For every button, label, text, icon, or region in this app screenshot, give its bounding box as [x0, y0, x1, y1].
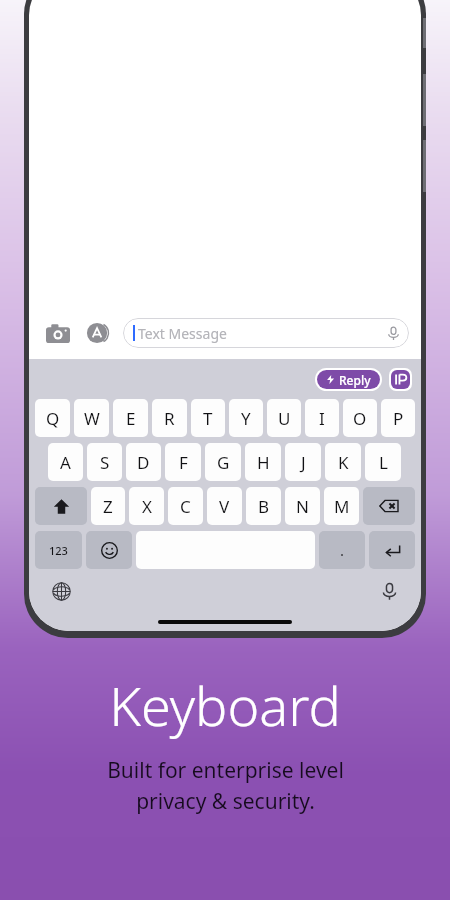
staticText: K: [338, 451, 349, 474]
staticText: F: [179, 451, 188, 474]
button[interactable]: Z: [91, 487, 125, 525]
staticText: Reply: [339, 372, 371, 388]
button[interactable]: U: [267, 399, 301, 437]
button[interactable]: Backspace: [363, 487, 415, 525]
button[interactable]: X: [129, 487, 164, 525]
staticText: privacy & security.: [136, 787, 315, 816]
staticText: Keyboard: [109, 668, 341, 742]
button[interactable]: C: [168, 487, 203, 525]
staticText: Built for enterprise level: [107, 756, 344, 785]
staticText: N: [296, 495, 309, 518]
button[interactable]: O: [343, 399, 377, 437]
button[interactable]: Switch language: [47, 577, 75, 605]
staticText: X: [142, 495, 152, 518]
button[interactable]: Camera: [41, 316, 75, 350]
staticText: A: [60, 451, 71, 474]
staticText: U: [278, 407, 291, 430]
staticText: P: [393, 407, 404, 430]
button[interactable]: .: [319, 531, 365, 569]
staticText: C: [180, 495, 191, 518]
button[interactable]: D: [126, 443, 161, 481]
staticText: T: [203, 407, 213, 430]
staticText: Y: [241, 407, 251, 430]
staticText: Text Message: [138, 324, 227, 343]
button[interactable]: W: [74, 399, 109, 437]
button[interactable]: J: [285, 443, 321, 481]
button[interactable]: Emoji: [86, 531, 132, 569]
button[interactable]: Y: [229, 399, 263, 437]
staticText: H: [257, 451, 270, 474]
button[interactable]: P: [381, 399, 415, 437]
button[interactable]: Dictate: [375, 577, 403, 605]
button[interactable]: S: [87, 443, 122, 481]
button[interactable]: L: [365, 443, 401, 481]
button[interactable]: Keyboard app: [391, 370, 410, 389]
staticText: W: [84, 407, 100, 430]
staticText: Q: [46, 407, 60, 430]
staticText: 123: [49, 543, 68, 558]
staticText: M: [334, 495, 350, 518]
staticText: J: [301, 451, 306, 474]
button[interactable]: Reply: [317, 370, 380, 389]
button[interactable]: F: [165, 443, 201, 481]
button[interactable]: Apps: [81, 316, 115, 350]
button[interactable]: B: [246, 487, 281, 525]
staticText: R: [164, 407, 175, 430]
staticText: L: [379, 451, 388, 474]
staticText: E: [126, 407, 136, 430]
button[interactable]: K: [325, 443, 361, 481]
button[interactable]: Q: [35, 399, 70, 437]
staticText: V: [219, 495, 230, 518]
staticText: B: [258, 495, 270, 518]
button[interactable]: E: [113, 399, 148, 437]
button[interactable]: H: [245, 443, 281, 481]
button[interactable]: Shift: [35, 487, 87, 525]
button[interactable]: N: [285, 487, 320, 525]
button[interactable]: I: [305, 399, 339, 437]
staticText: S: [100, 451, 110, 474]
button[interactable]: T: [191, 399, 225, 437]
button[interactable]: Return: [369, 531, 415, 569]
button[interactable]: V: [207, 487, 242, 525]
staticText: G: [217, 451, 230, 474]
staticText: O: [353, 407, 367, 430]
button[interactable]: G: [205, 443, 241, 481]
button[interactable]: Text Message: [123, 318, 409, 348]
staticText: D: [137, 451, 150, 474]
button[interactable]: 123: [35, 531, 82, 569]
staticText: Z: [103, 495, 113, 518]
button[interactable]: M: [324, 487, 359, 525]
button[interactable]: A: [48, 443, 83, 481]
staticText: .: [340, 540, 345, 560]
button[interactable]: R: [152, 399, 187, 437]
staticText: I: [319, 407, 325, 430]
